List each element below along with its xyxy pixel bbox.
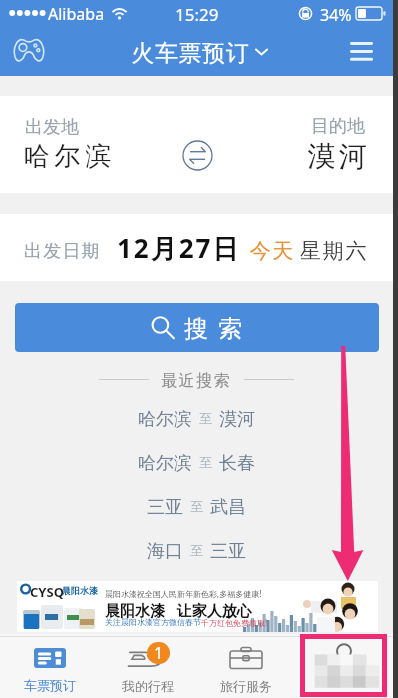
button[interactable]: 哈尔滨 <box>0 408 393 428</box>
button[interactable]: Menu <box>339 29 383 73</box>
staticText: 三亚 <box>147 496 183 516</box>
staticText: 晨阳水漆 让家人放心 <box>105 600 252 620</box>
staticText: CYSQ <box>30 583 64 601</box>
staticText: 34% <box>320 4 352 26</box>
button[interactable]: 旅行服务 <box>197 634 295 698</box>
staticText: 哈尔滨 <box>138 452 192 472</box>
staticText: 三亚 <box>210 540 246 560</box>
staticText: 至 <box>190 542 203 558</box>
button[interactable]: Games <box>7 29 51 73</box>
button[interactable]: 出发地 <box>0 96 160 193</box>
staticText: 旅行服务 <box>220 678 272 694</box>
staticText: 漠河 <box>306 139 368 174</box>
staticText: 哈尔滨 <box>21 140 114 173</box>
staticText: 关注晨阳水漆官方微信春节 <box>105 617 201 627</box>
staticText: 哈尔滨 <box>138 408 192 428</box>
staticText: 搜 索 <box>184 311 245 344</box>
button[interactable]: 搜 索 <box>15 303 379 352</box>
button[interactable]: 哈尔滨 <box>0 452 393 472</box>
staticText: 至 <box>199 454 212 470</box>
staticText: 千万红包免费领取! <box>201 617 268 628</box>
button[interactable]: Advertisement <box>17 581 378 632</box>
button[interactable]: Profile <box>295 634 393 698</box>
button[interactable]: 出发日期 <box>0 214 393 281</box>
staticText: 12月27日 <box>117 230 241 266</box>
staticText: 星期六 <box>300 238 369 264</box>
staticText: 我的行程 <box>122 678 174 694</box>
staticText: 漠河 <box>219 408 255 428</box>
staticText: 晨阳水漆祝全国人民新年新色彩,多福多健康! <box>105 588 262 599</box>
staticText: 火车票预订 <box>131 39 249 68</box>
button[interactable]: 海口 <box>0 540 393 560</box>
staticText: 车票预订 <box>24 677 76 693</box>
staticText: 1 <box>154 642 164 664</box>
button[interactable]: 火车票预订 <box>131 39 268 68</box>
button[interactable]: 目的地 <box>233 96 393 193</box>
staticText: 长春 <box>219 452 255 472</box>
staticText: 今天 <box>249 238 294 264</box>
staticText: 最近搜索 <box>161 371 232 389</box>
button[interactable]: 车票预订 <box>0 634 99 698</box>
staticText: 武昌 <box>210 496 246 516</box>
staticText: 海口 <box>147 540 183 560</box>
button[interactable]: 三亚 <box>0 496 393 516</box>
staticText: 15:29 <box>175 3 219 26</box>
staticText: 出发日期 <box>24 240 101 263</box>
staticText: 至 <box>199 410 212 426</box>
button[interactable]: Swap <box>177 135 217 175</box>
staticText: 至 <box>190 498 203 514</box>
button[interactable]: 1 <box>99 634 197 698</box>
staticText: 出发地 <box>25 116 79 139</box>
staticText: Alibaba <box>48 3 105 25</box>
staticText: 目的地 <box>311 115 365 138</box>
staticText: 晨阳水漆 <box>62 585 98 596</box>
